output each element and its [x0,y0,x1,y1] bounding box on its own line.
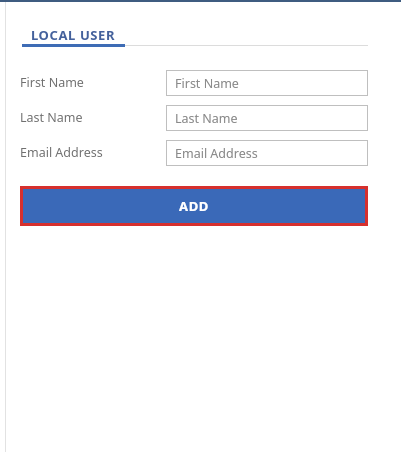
staticText: First Name [175,75,239,92]
button[interactable]: LOCAL USER [29,24,118,46]
button[interactable]: Last Name [166,105,368,131]
staticText: Email Address [175,145,258,162]
staticText: Last Name [175,110,238,127]
staticText: Email Address [20,144,103,161]
staticText: ADD [179,197,209,215]
staticText: First Name [20,74,84,91]
button[interactable]: First Name [166,70,368,96]
staticText: LOCAL USER [31,26,116,44]
button[interactable]: Email Address [166,140,368,166]
button[interactable]: ADD [23,189,365,223]
staticText: Last Name [20,109,83,126]
